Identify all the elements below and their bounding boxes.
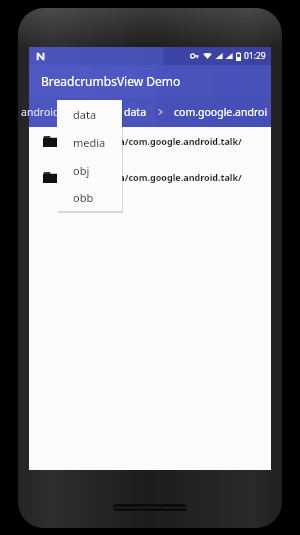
button[interactable]: android: [18, 105, 66, 119]
button[interactable]: media: [57, 128, 122, 156]
other: Folder: [43, 136, 57, 147]
staticText: Android/data/com.google.android.talk/ses…: [65, 135, 271, 147]
button[interactable]: data: [57, 100, 122, 128]
button[interactable]: data: [120, 105, 151, 119]
staticText: obb: [73, 190, 94, 205]
button[interactable]: obb: [57, 184, 122, 211]
staticText: data: [124, 105, 147, 119]
staticText: BreadcrumbsView Demo: [41, 73, 181, 89]
button[interactable]: Folder: [29, 169, 271, 185]
staticText: com.google.android.talk: [174, 105, 269, 119]
staticText: obj: [73, 163, 90, 178]
button[interactable]: obj: [57, 156, 122, 184]
staticText: 01:29: [244, 50, 266, 62]
staticText: Android/data/com.google.android.talk/dow…: [65, 171, 271, 183]
staticText: android: [21, 105, 60, 119]
staticText: media: [73, 135, 106, 150]
button[interactable]: Folder: [29, 133, 271, 149]
button[interactable]: com.google.android.talk: [172, 105, 271, 119]
other: Folder: [43, 172, 57, 183]
staticText: data: [73, 107, 97, 122]
